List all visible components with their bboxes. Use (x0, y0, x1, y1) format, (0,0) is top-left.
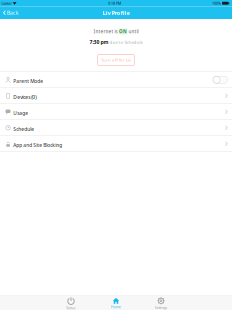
staticText: Carrier (1, 1, 11, 6)
staticText: Internet is (94, 28, 119, 35)
button[interactable]: Schedule (0, 120, 232, 135)
staticText: App and Site Blocking (13, 142, 62, 148)
button[interactable]: Home (93, 295, 138, 310)
button[interactable]: Status (48, 295, 93, 310)
staticText: 100% (212, 1, 221, 6)
staticText: Schedule (13, 126, 34, 132)
staticText: Back (7, 9, 19, 16)
staticText: Turn off for Liv (101, 57, 131, 63)
staticText: Devices (0) (13, 94, 36, 100)
button[interactable]: Turn off for Liv (98, 54, 134, 65)
button[interactable]: Back (0, 6, 22, 19)
button[interactable]: Usage (0, 104, 232, 119)
staticText: Home (111, 304, 121, 309)
staticText: 9:18 PM (108, 1, 121, 6)
staticText: 7:30 pm (89, 39, 108, 45)
staticText: Usage (13, 110, 28, 116)
button[interactable]: Parent Mode (0, 72, 232, 87)
button[interactable]: App and Site Blocking (0, 136, 232, 151)
button[interactable]: Settings (138, 295, 183, 310)
staticText: Parent Mode (13, 78, 43, 84)
staticText: Status (66, 305, 76, 310)
button[interactable]: Devices (0) (0, 88, 232, 103)
staticText: Settings (154, 305, 167, 310)
staticText: Liv Profile (102, 9, 129, 16)
staticText: ON (119, 28, 127, 35)
staticText: until (127, 28, 138, 35)
staticText: due to Schedule (108, 39, 142, 45)
